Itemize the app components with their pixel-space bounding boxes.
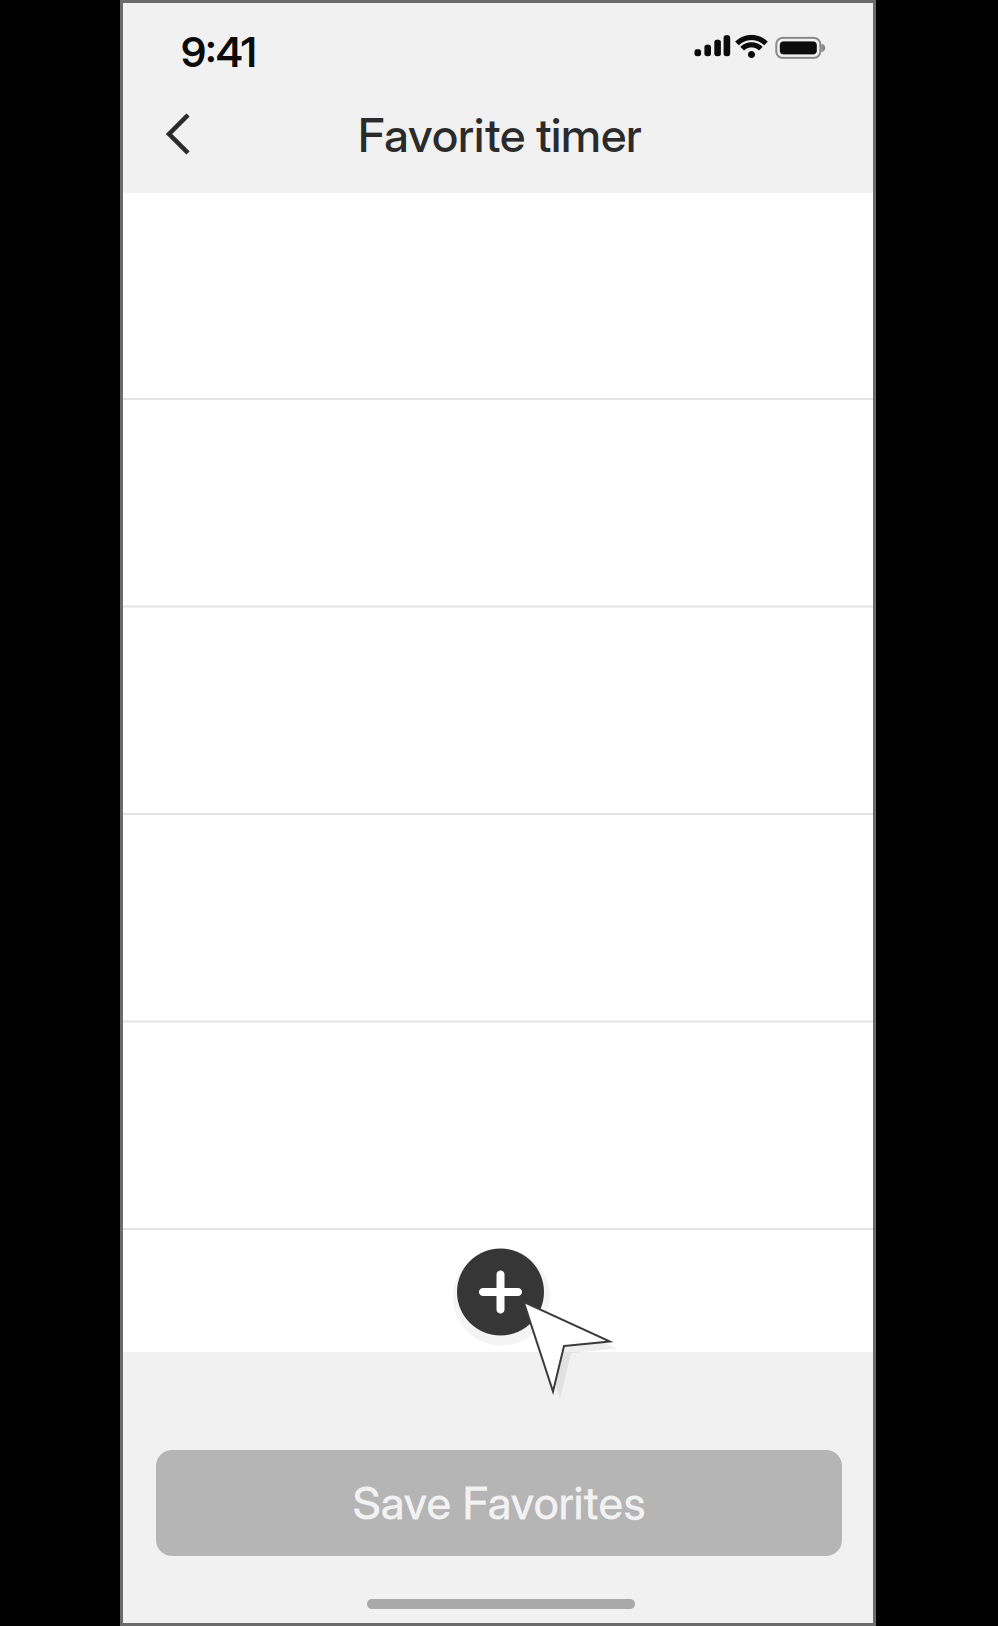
staticText: Save Favorites	[352, 1476, 645, 1530]
button[interactable]: Back	[143, 98, 215, 170]
staticText: Favorite timer	[358, 107, 642, 163]
button[interactable]: Add favorite timer	[457, 1248, 544, 1335]
staticText: 9:41	[181, 27, 257, 77]
button[interactable]: Save Favorites	[156, 1450, 842, 1556]
